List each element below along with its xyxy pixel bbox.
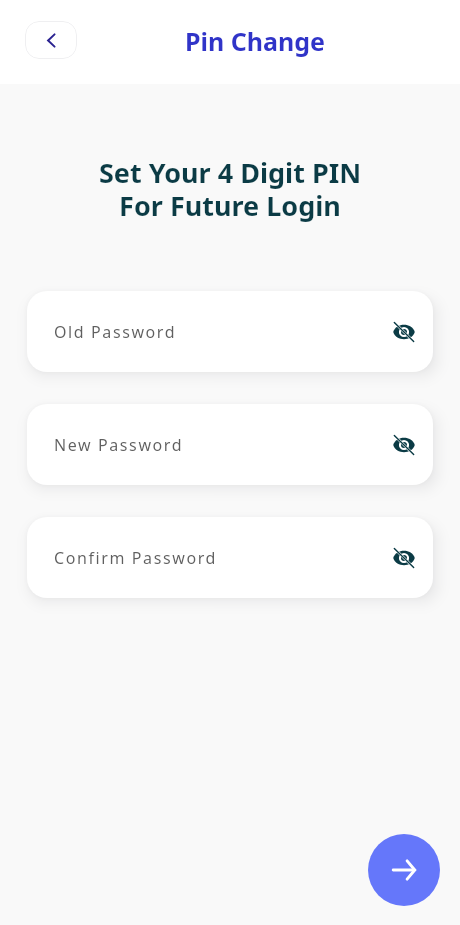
button[interactable]: Old Password (27, 291, 433, 372)
staticText: Pin Change (185, 24, 326, 58)
button[interactable]: Continue (368, 834, 440, 906)
button[interactable]: Back (25, 21, 77, 59)
button[interactable]: Confirm Password (27, 517, 433, 598)
staticText: New Password (54, 434, 184, 456)
staticText: Old Password (54, 321, 177, 343)
staticText: Confirm Password (54, 547, 218, 569)
button[interactable]: New Password (27, 404, 433, 485)
staticText: Set Your 4 Digit PIN For Future Login (0, 154, 460, 224)
